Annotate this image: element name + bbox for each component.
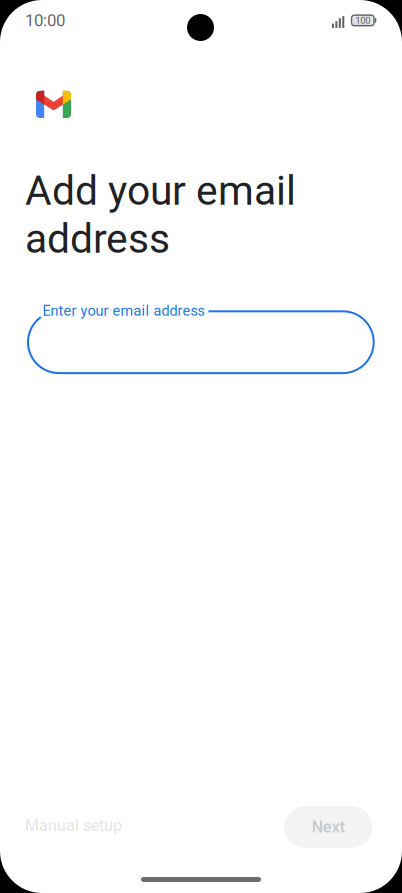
staticText: Enter your email address xyxy=(42,302,204,319)
staticText: 10:00 xyxy=(25,11,65,30)
staticText: Next xyxy=(312,818,345,836)
button[interactable]: Next xyxy=(284,806,372,848)
staticText: 100 xyxy=(355,15,370,26)
button[interactable]: Manual setup xyxy=(25,804,135,846)
staticText: Manual setup xyxy=(25,816,122,835)
staticText: Add your email address xyxy=(25,167,296,263)
